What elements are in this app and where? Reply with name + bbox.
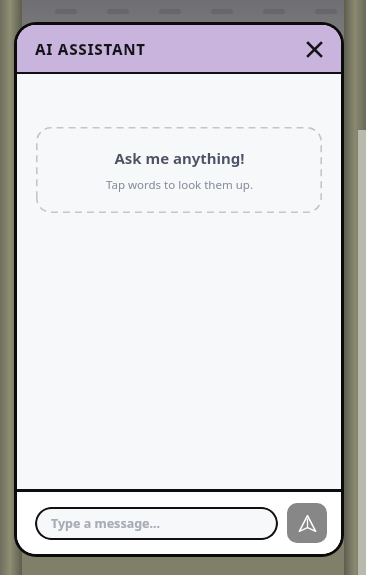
button[interactable]: Send	[287, 503, 327, 543]
staticText: Type a message...	[51, 515, 161, 532]
staticText: Ask me anything!	[114, 148, 245, 168]
button[interactable]: Type a message...	[35, 507, 278, 540]
button[interactable]: Close	[297, 32, 331, 66]
staticText: AI ASSISTANT	[35, 39, 146, 59]
staticText: Tap words to look them up.	[106, 177, 253, 193]
